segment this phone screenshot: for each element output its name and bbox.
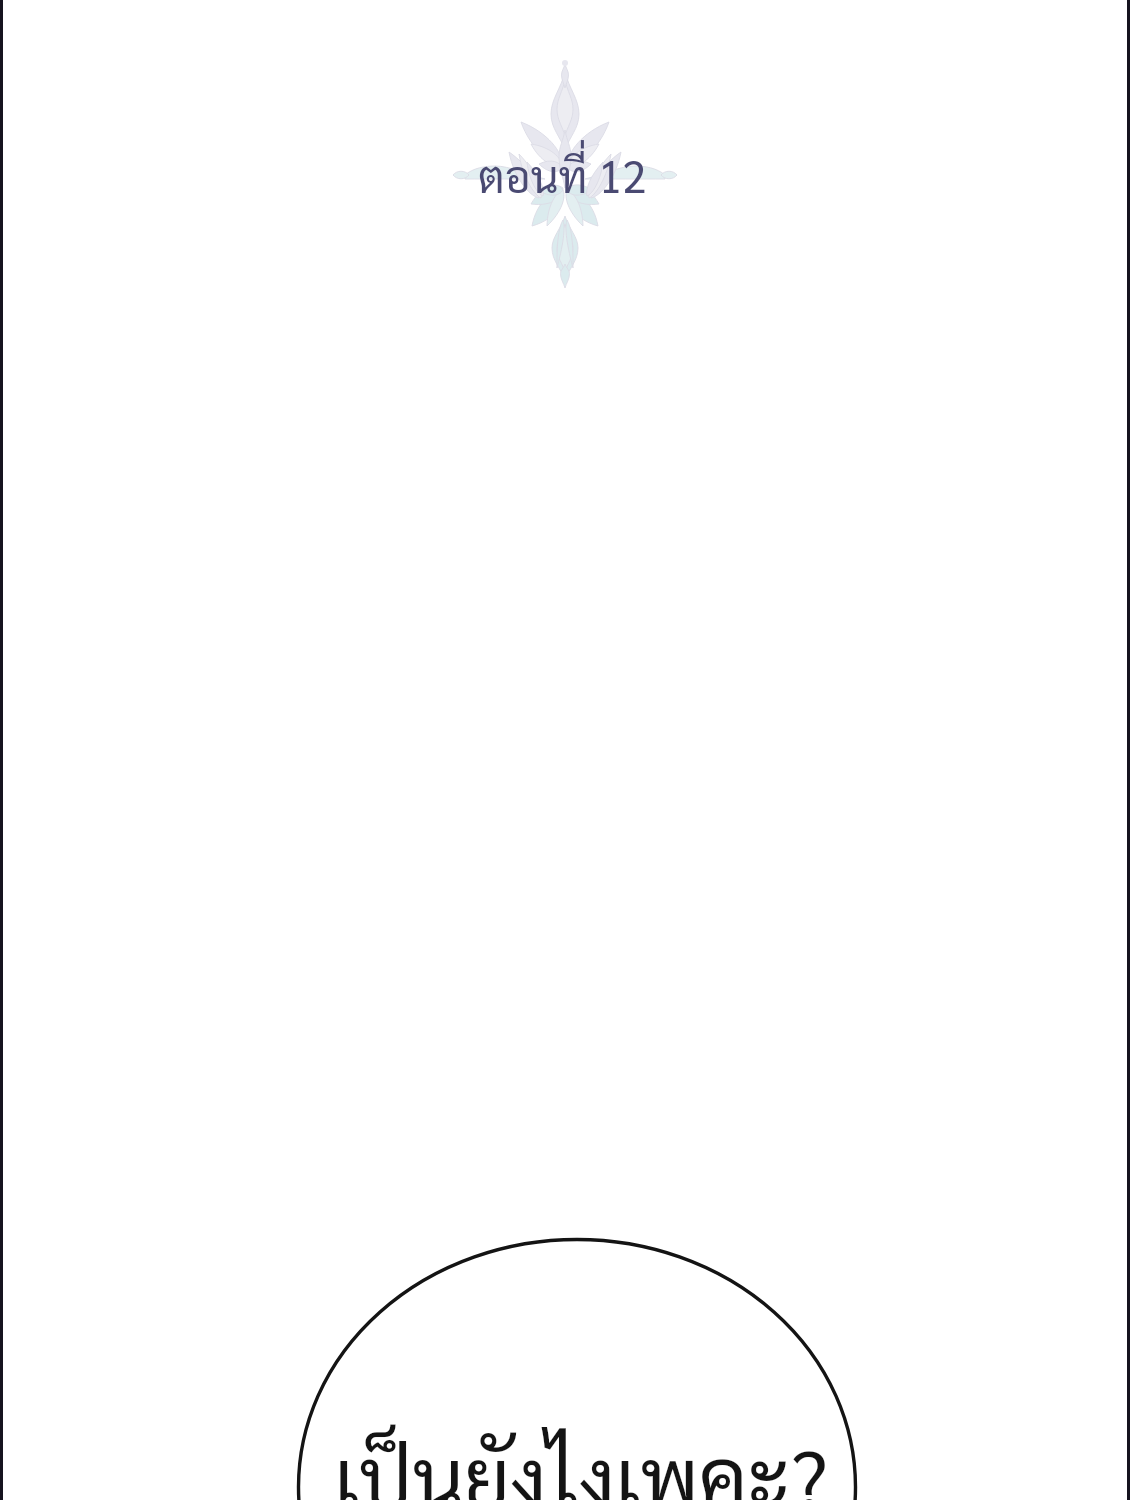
button[interactable]: Chapter 12 page, tap to show reader cont… xyxy=(0,0,1130,1500)
